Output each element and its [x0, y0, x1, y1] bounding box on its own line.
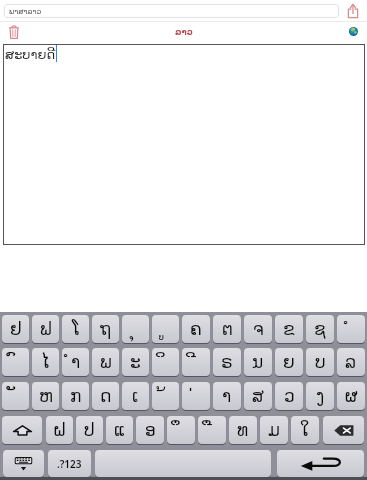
- staticText: ພ: [100, 352, 112, 372]
- staticText: າ: [222, 386, 232, 406]
- button[interactable]: ຊ: [306, 315, 334, 343]
- button[interactable]: ູ: [152, 315, 179, 343]
- button[interactable]: າ: [213, 382, 241, 410]
- button[interactable]: ສະບາຍດີ: [3, 44, 365, 245]
- button[interactable]: ຝ: [46, 416, 73, 444]
- staticText: ໃ: [300, 420, 310, 440]
- staticText: ເ: [132, 386, 139, 406]
- button[interactable]: Shift: [2, 416, 42, 444]
- staticText: ຳ: [71, 352, 81, 372]
- button[interactable]: Share: [344, 2, 362, 20]
- button[interactable]: ຣ: [213, 348, 241, 376]
- staticText: ຈ: [253, 319, 264, 339]
- button[interactable]: ື: [198, 416, 226, 444]
- staticText: ຄ: [190, 319, 202, 339]
- staticText: ທ: [237, 420, 249, 440]
- button[interactable]: ຳ: [62, 348, 89, 376]
- button[interactable]: ຈ: [244, 315, 272, 343]
- button[interactable]: ່: [182, 382, 210, 410]
- button[interactable]: .?123: [48, 450, 91, 477]
- staticText: .?123: [57, 457, 82, 471]
- button[interactable]: ເ: [122, 382, 149, 410]
- staticText: ດ: [100, 386, 112, 406]
- staticText: ນ: [252, 352, 264, 372]
- button[interactable]: ພາສາລາວ: [4, 4, 339, 18]
- staticText: ລ: [345, 352, 357, 372]
- staticText: ງ: [316, 386, 325, 406]
- button[interactable]: ຸ: [122, 315, 149, 343]
- button[interactable]: ີ: [182, 348, 210, 376]
- button[interactable]: ໂ: [62, 315, 89, 343]
- button[interactable]: ປ: [76, 416, 103, 444]
- button[interactable]: ອ: [136, 416, 164, 444]
- button[interactable]: ົ: [2, 348, 29, 376]
- button[interactable]: ບ: [306, 348, 334, 376]
- button[interactable]: ລາວ: [0, 24, 367, 40]
- staticText: ລາວ: [175, 27, 193, 37]
- staticText: ບ: [315, 352, 326, 372]
- button[interactable]: ພ: [92, 348, 119, 376]
- button[interactable]: ທ: [229, 416, 257, 444]
- staticText: ຟ: [40, 319, 52, 339]
- button[interactable]: ຜ: [337, 382, 365, 410]
- button[interactable]: ຕ: [213, 315, 241, 343]
- staticText: ຢ: [10, 319, 22, 339]
- button[interactable]: ແ: [106, 416, 133, 444]
- button[interactable]: ຍ: [275, 348, 303, 376]
- button[interactable]: ຫ: [32, 382, 59, 410]
- staticText: ຍ: [283, 352, 295, 372]
- staticText: ພາສາລາວ: [9, 7, 42, 16]
- button[interactable]: [95, 450, 271, 477]
- staticText: ກ: [70, 386, 82, 406]
- button[interactable]: ັ: [2, 382, 29, 410]
- staticText: ໄ: [41, 352, 50, 372]
- staticText: ຊ: [314, 319, 326, 339]
- button[interactable]: ຟ: [32, 315, 59, 343]
- staticText: ແ: [114, 420, 126, 440]
- staticText: ຫ: [39, 386, 53, 406]
- staticText: ຝ: [53, 420, 67, 440]
- staticText: ຖ: [100, 319, 111, 339]
- staticText: ສ: [252, 386, 264, 406]
- button[interactable]: ຖ: [92, 315, 119, 343]
- button[interactable]: ສ: [244, 382, 272, 410]
- button[interactable]: ້: [152, 382, 179, 410]
- button[interactable]: Hide keyboard: [3, 450, 44, 477]
- button[interactable]: ງ: [306, 382, 334, 410]
- staticText: ຂ: [283, 319, 295, 339]
- button[interactable]: ວ: [275, 382, 303, 410]
- button[interactable]: Backspace: [323, 416, 364, 444]
- staticText: ວ: [284, 386, 295, 406]
- staticText: ຣ: [221, 352, 233, 372]
- staticText: ຕ: [222, 319, 233, 339]
- button[interactable]: ຂ: [275, 315, 303, 343]
- button[interactable]: ໄ: [32, 348, 59, 376]
- button[interactable]: ຢ: [2, 315, 29, 343]
- button[interactable]: ິ: [152, 348, 179, 376]
- button[interactable]: Language: [345, 23, 362, 40]
- button[interactable]: ດ: [92, 382, 119, 410]
- button[interactable]: ມ: [260, 416, 288, 444]
- button[interactable]: ໃ: [291, 416, 319, 444]
- staticText: ປ: [84, 420, 95, 440]
- button[interactable]: ນ: [244, 348, 272, 376]
- button[interactable]: ະ: [122, 348, 149, 376]
- button[interactable]: ລ: [337, 348, 365, 376]
- staticText: ສະບາຍດີ: [5, 47, 56, 62]
- button[interactable]: ໍ: [337, 315, 365, 343]
- button[interactable]: ຄ: [182, 315, 210, 343]
- staticText: ຜ: [345, 386, 358, 406]
- staticText: ະ: [130, 352, 141, 372]
- button[interactable]: ຶ: [167, 416, 195, 444]
- button[interactable]: Delete: [5, 23, 23, 41]
- staticText: ມ: [268, 420, 280, 440]
- button[interactable]: Return: [277, 450, 364, 477]
- button[interactable]: ກ: [62, 382, 89, 410]
- staticText: ອ: [145, 420, 156, 440]
- staticText: ໂ: [72, 319, 80, 339]
